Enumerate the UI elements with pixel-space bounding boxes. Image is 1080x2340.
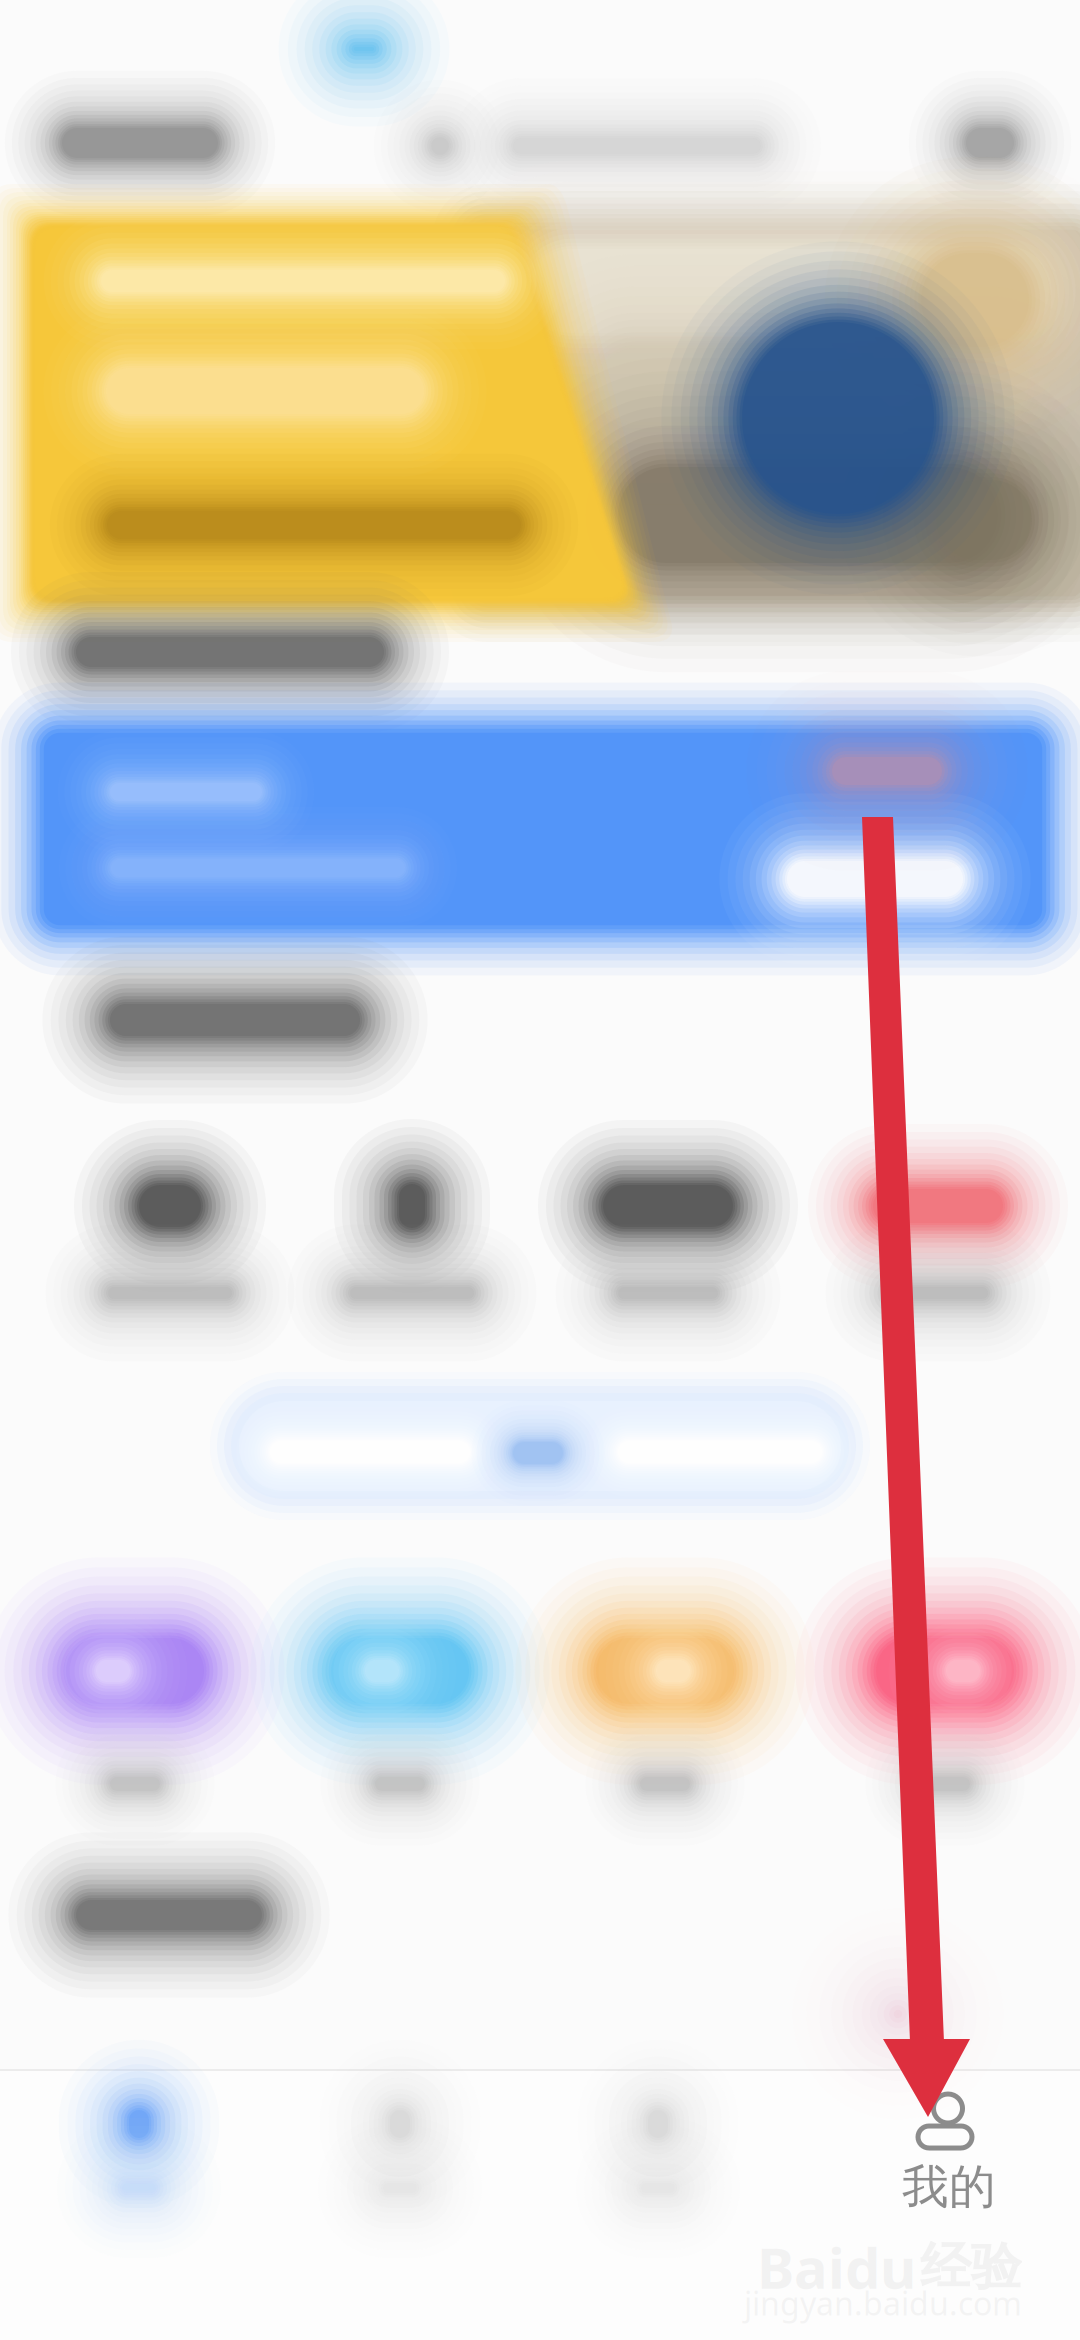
button[interactable]: Tab [0, 0, 1080, 2340]
button[interactable]: Tab [0, 0, 1080, 2340]
button[interactable] [0, 0, 1080, 2340]
button[interactable]: More [470, 1123, 610, 1217]
button[interactable]: Option one [410, 1132, 670, 1208]
button[interactable]: Quick action [0, 0, 1080, 2340]
staticText: jingyan.baidu.com [744, 2282, 1022, 2324]
button[interactable]: Quick action [0, 0, 1080, 2340]
button[interactable]: Option two [410, 1132, 670, 1208]
staticText: 我的 [902, 2158, 996, 2216]
button[interactable]: Quick action [0, 0, 1080, 2340]
staticText: Baidu [757, 2230, 916, 2304]
staticText: 经验 [920, 2236, 1022, 2298]
button[interactable]: Tab [0, 0, 1080, 2340]
button[interactable]: Quick action [0, 0, 1080, 2340]
button[interactable] [0, 0, 1080, 2340]
button[interactable]: 我的 [0, 0, 1080, 2340]
